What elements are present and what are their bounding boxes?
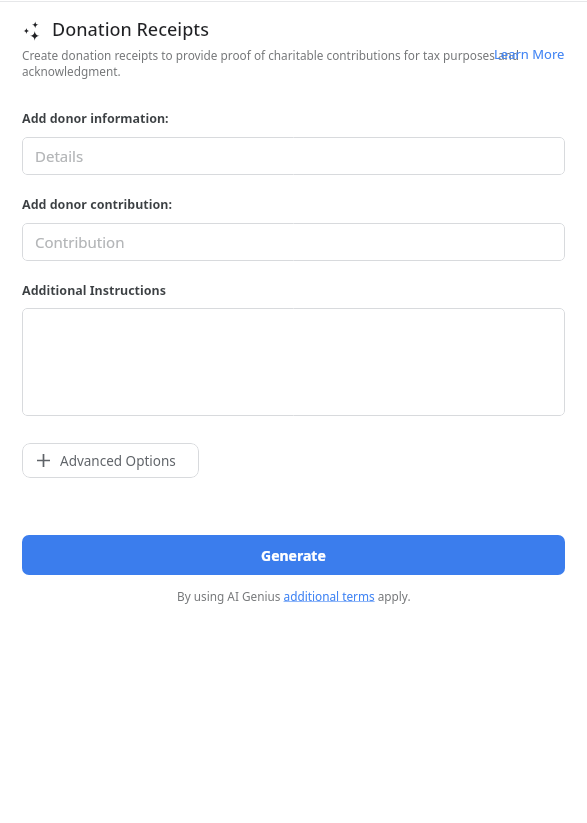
button[interactable]: Advanced Options [22, 443, 199, 478]
staticText: Learn More [494, 45, 565, 63]
staticText: Add donor contribution: [22, 196, 172, 213]
staticText: By using AI Genius additional terms appl… [177, 588, 411, 604]
staticText: Details [35, 146, 84, 166]
staticText: Advanced Options [60, 452, 176, 470]
button[interactable]: Contribution [22, 223, 565, 261]
button[interactable] [22, 308, 565, 416]
staticText: Donation Receipts [52, 17, 209, 42]
staticText: Add donor information: [22, 110, 169, 127]
button[interactable]: Details [22, 137, 565, 175]
staticText: Additional Instructions [22, 282, 166, 299]
button[interactable]: Learn More [494, 45, 565, 63]
staticText: Generate [261, 546, 326, 565]
button[interactable]: Generate [22, 535, 565, 575]
staticText: Contribution [35, 232, 125, 252]
staticText: Create donation receipts to provide proo… [22, 47, 565, 80]
